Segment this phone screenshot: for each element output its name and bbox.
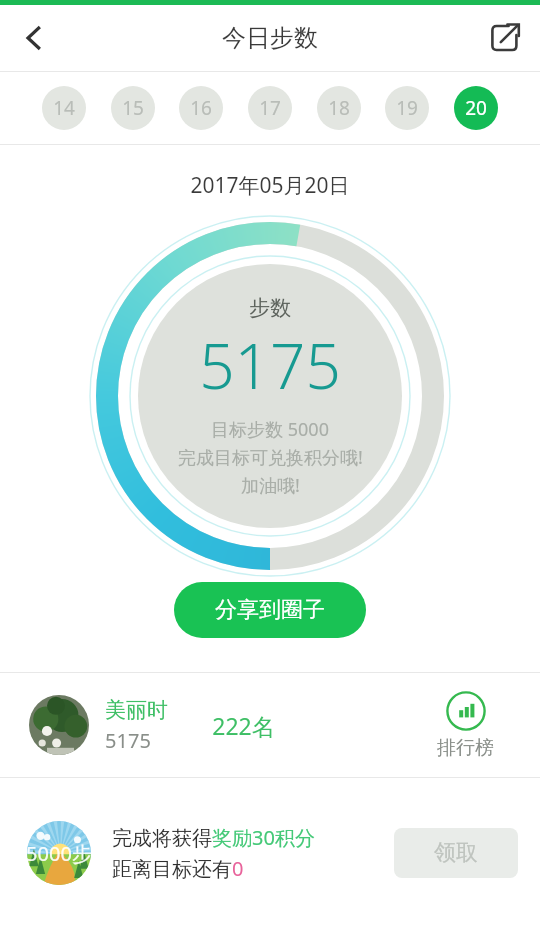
button[interactable]: 领取: [394, 828, 518, 878]
staticText: 14: [53, 95, 75, 121]
staticText: 距离目标还有0: [112, 855, 244, 882]
staticText: 加油哦!: [241, 473, 300, 498]
button[interactable]: 17: [248, 86, 292, 130]
staticText: 18: [328, 95, 350, 121]
staticText: 完成目标可兑换积分哦!: [178, 445, 363, 470]
button[interactable]: 19: [385, 86, 429, 130]
staticText: 5000步: [26, 840, 92, 867]
staticText: 17: [259, 95, 281, 121]
staticText: 16: [190, 95, 212, 121]
staticText: 分享到圈子: [215, 596, 325, 624]
button[interactable]: Share: [478, 11, 532, 65]
button[interactable]: 14: [42, 86, 86, 130]
staticText: 5175: [105, 727, 151, 754]
button[interactable]: 15: [111, 86, 155, 130]
button[interactable]: 18: [317, 86, 361, 130]
button[interactable]: 16: [179, 86, 223, 130]
staticText: 步数: [249, 295, 291, 321]
staticText: 222名: [212, 710, 275, 741]
staticText: 5175: [199, 323, 341, 407]
staticText: 目标步数 5000: [211, 417, 329, 442]
button[interactable]: 美丽时: [0, 673, 540, 777]
staticText: 19: [396, 95, 418, 121]
staticText: 今日步数: [222, 23, 318, 53]
staticText: 20: [465, 95, 487, 121]
button[interactable]: Back: [6, 10, 62, 66]
staticText: 排行榜: [437, 736, 494, 760]
button[interactable]: 分享到圈子: [174, 582, 366, 638]
staticText: 美丽时: [105, 697, 168, 723]
staticText: 2017年05月20日: [0, 171, 540, 200]
staticText: 领取: [434, 839, 478, 867]
staticText: 完成将获得奖励30积分: [112, 824, 315, 851]
button[interactable]: 排行榜: [437, 691, 494, 760]
button[interactable]: 20: [454, 86, 498, 130]
staticText: 15: [122, 95, 144, 121]
